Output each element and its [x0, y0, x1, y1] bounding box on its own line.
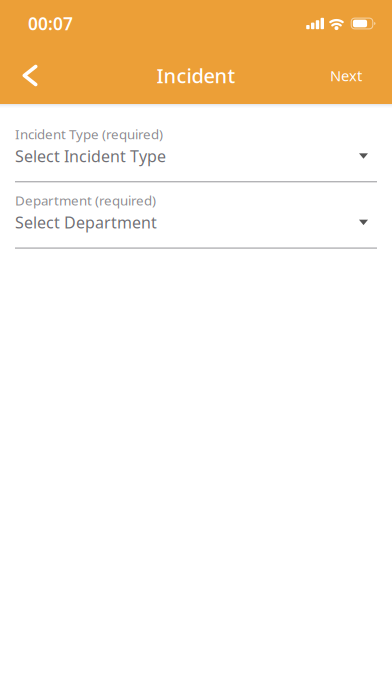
staticText: Incident Type (required) [15, 125, 163, 143]
staticText: 00:07 [28, 12, 73, 35]
staticText: Incident [156, 62, 235, 89]
staticText: Select Department [15, 212, 157, 233]
staticText: Next [330, 66, 362, 85]
button[interactable]: Department (required) [15, 193, 377, 249]
button[interactable]: Next [320, 53, 372, 97]
staticText: Department (required) [15, 191, 156, 209]
button[interactable]: Incident Type (required) [15, 127, 377, 182]
staticText: Select Incident Type [15, 145, 166, 167]
button[interactable]: Back [8, 53, 52, 97]
